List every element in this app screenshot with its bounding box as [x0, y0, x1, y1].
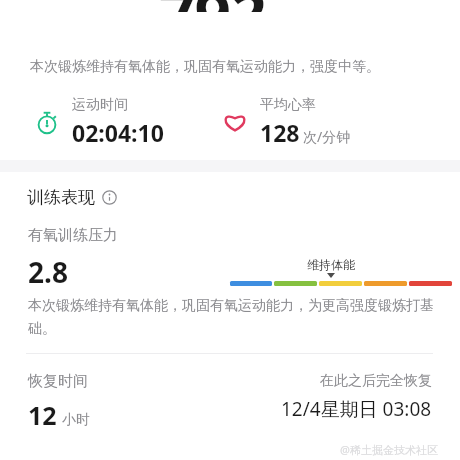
- staticText: 恢复时间: [28, 372, 88, 391]
- staticText: 12: [28, 398, 57, 432]
- staticText: 训练表现: [27, 187, 95, 208]
- staticText: 12/4星期日 03:08: [281, 396, 432, 422]
- button[interactable]: 运动时间: [0, 96, 218, 148]
- staticText: 运动时间: [72, 96, 128, 114]
- staticText: 平均心率: [260, 96, 316, 114]
- button[interactable]: 训练表现: [27, 187, 117, 208]
- staticText: 有氧训练压力: [28, 226, 118, 245]
- staticText: 本次锻炼维持有氧体能，巩固有氧运动能力，为更高强度锻炼打基础。: [28, 297, 434, 337]
- other: 训练表现说明: [102, 190, 117, 205]
- other: 运动时间: [30, 105, 64, 139]
- staticText: 792: [159, 0, 266, 12]
- button[interactable]: 平均心率: [218, 96, 460, 148]
- other: 平均心率: [218, 105, 252, 139]
- staticText: 2.8: [28, 253, 68, 289]
- staticText: 维持体能: [307, 257, 355, 272]
- staticText: 本次锻炼维持有氧体能，巩固有氧运动能力，强度中等。: [30, 58, 380, 76]
- staticText: 次/分钟: [303, 127, 351, 146]
- staticText: 128: [260, 117, 300, 148]
- staticText: @稀土掘金技术社区: [340, 442, 438, 457]
- staticText: 小时: [62, 411, 90, 429]
- staticText: 02:04:10: [72, 117, 164, 148]
- staticText: 在此之后完全恢复: [320, 372, 432, 390]
